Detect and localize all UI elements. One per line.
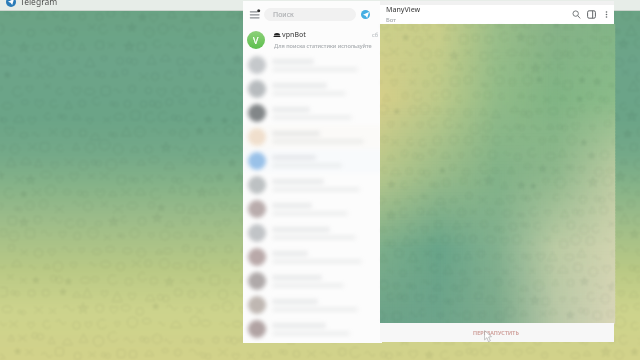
staticText: ManyView [386,5,421,15]
button[interactable] [243,53,382,77]
staticText: Для поиска статистики используйте след… [274,42,382,50]
button[interactable] [243,269,382,293]
button[interactable]: V [243,27,382,53]
button[interactable] [243,77,382,101]
button[interactable] [243,317,382,341]
button[interactable] [243,173,382,197]
staticText: Бот [386,16,396,24]
button[interactable]: Поиск [264,8,356,21]
button[interactable] [243,245,382,269]
button[interactable] [243,221,382,245]
staticText: Telegram [20,0,58,7]
staticText: Поиск [273,10,294,20]
staticText: V [253,34,259,46]
staticText: vpnBot [282,30,306,40]
button[interactable]: More options [600,8,613,21]
button[interactable]: Toggle side panel [585,8,598,21]
button[interactable] [243,149,382,173]
button[interactable]: Search [570,8,583,21]
button[interactable]: Menu [247,7,261,21]
button[interactable]: ПЕРЕЗАПУСТИТЬ [380,323,614,342]
button[interactable]: New message [361,10,370,19]
button[interactable] [243,101,382,125]
button[interactable] [243,293,382,317]
staticText: ПЕРЕЗАПУСТИТЬ [473,329,520,336]
button[interactable] [243,125,382,149]
staticText: сб [372,31,378,38]
button[interactable] [243,197,382,221]
